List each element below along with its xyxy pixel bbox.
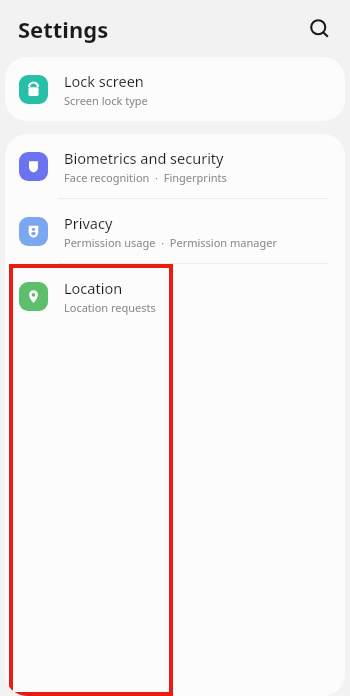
button[interactable]: Biometrics and security (5, 134, 345, 198)
button[interactable]: Search (300, 9, 340, 49)
staticText: Face recognition · Fingerprints (64, 170, 227, 185)
button[interactable]: Lock screen (5, 57, 345, 121)
button[interactable]: Privacy (5, 199, 345, 263)
staticText: Screen lock type (64, 93, 148, 108)
staticText: Settings (18, 14, 109, 44)
staticText: Lock screen (64, 71, 144, 91)
staticText: Privacy (64, 213, 113, 233)
button[interactable]: Location (5, 264, 345, 328)
staticText: Biometrics and security (64, 148, 224, 168)
staticText: Location requests (64, 300, 156, 315)
staticText: Permission usage · Permission manager (64, 235, 277, 250)
staticText: Location (64, 278, 123, 298)
